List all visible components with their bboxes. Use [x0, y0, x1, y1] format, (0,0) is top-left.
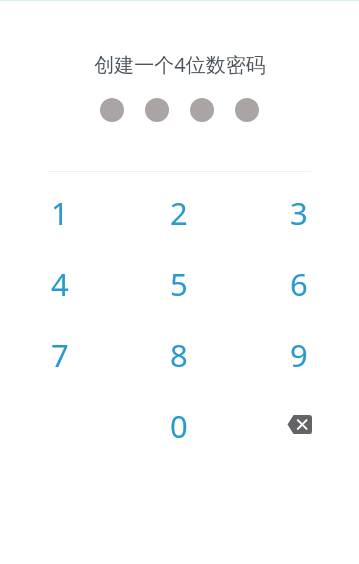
button[interactable]: 4 [0, 249, 119, 320]
button[interactable]: 5 [119, 249, 239, 320]
button[interactable]: 0 [119, 391, 239, 462]
staticText: 7 [51, 334, 69, 376]
button[interactable]: 2 [119, 178, 239, 249]
staticText: 创建一个4位数密码 [94, 51, 266, 78]
button[interactable]: Delete [239, 391, 359, 462]
staticText: 3 [290, 192, 308, 234]
staticText: 2 [170, 192, 188, 234]
staticText: 0 [170, 405, 188, 447]
staticText: 1 [51, 192, 69, 234]
staticText: 9 [290, 334, 308, 376]
staticText: 4 [51, 263, 69, 305]
button[interactable]: 7 [0, 320, 119, 391]
staticText: 8 [170, 334, 188, 376]
staticText: 6 [290, 263, 308, 305]
button[interactable]: 6 [239, 249, 359, 320]
staticText: 5 [170, 263, 188, 305]
button[interactable]: 1 [0, 178, 119, 249]
button[interactable]: 8 [119, 320, 239, 391]
button[interactable]: 9 [239, 320, 359, 391]
button[interactable]: 3 [239, 178, 359, 249]
